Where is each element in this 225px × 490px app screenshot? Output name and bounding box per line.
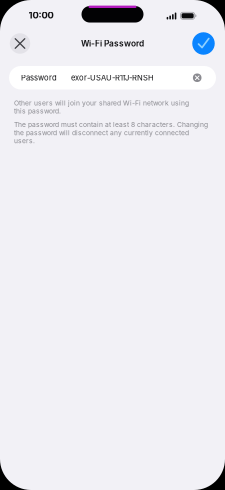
staticText: Password — [21, 73, 57, 82]
button[interactable]: Clear text — [193, 73, 201, 82]
staticText: The password must contain at least 8 cha… — [14, 121, 208, 145]
staticText: Wi-Fi Password — [81, 39, 144, 48]
button[interactable]: Close — [10, 33, 30, 54]
button[interactable]: Done — [192, 32, 215, 55]
staticText: exor-USAU-R1fJ-RNSH — [71, 73, 154, 82]
staticText: 10:00 — [28, 10, 53, 21]
staticText: Other users will join your shared Wi-Fi … — [14, 99, 189, 115]
